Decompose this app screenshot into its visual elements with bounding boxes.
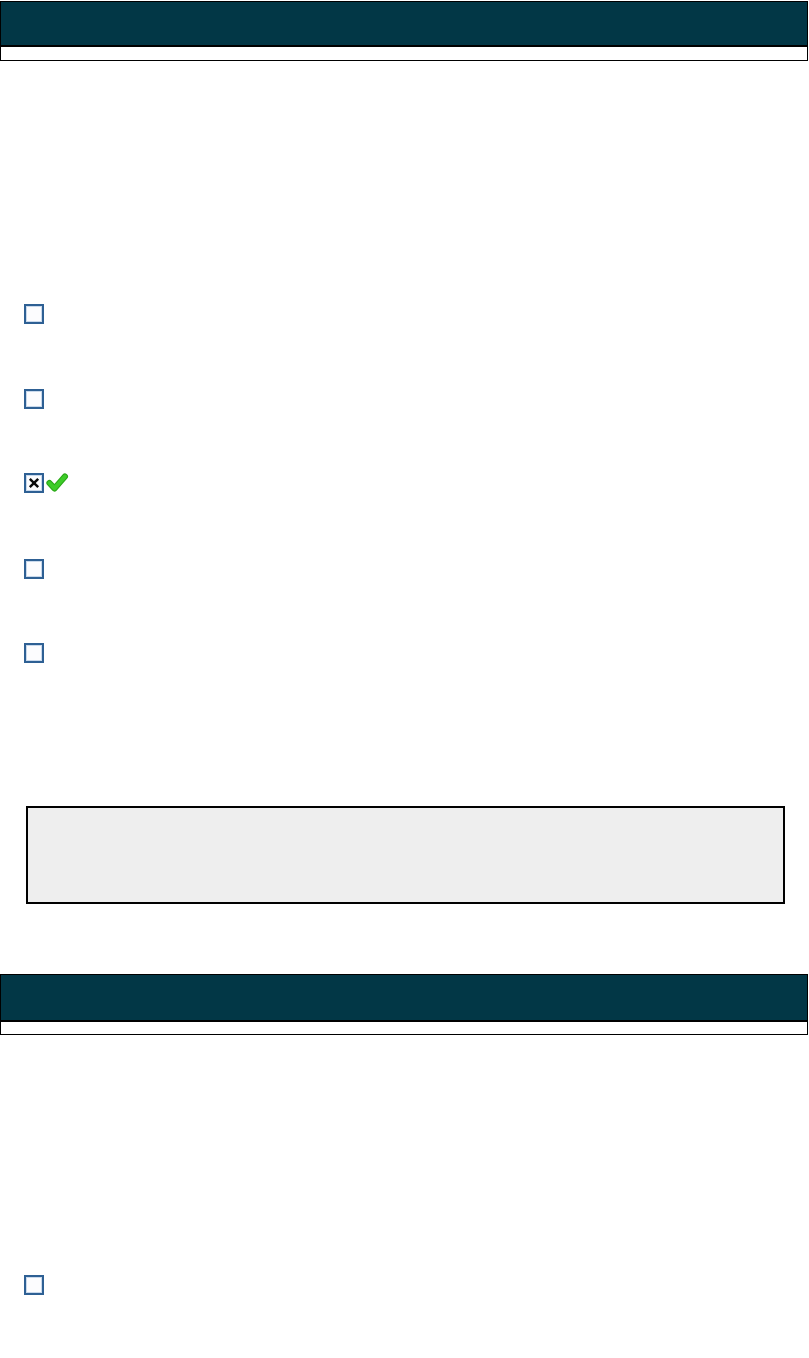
button[interactable]: Option six bbox=[24, 1275, 44, 1295]
button[interactable]: Section two header bbox=[0, 974, 808, 1035]
button[interactable]: Option two bbox=[24, 389, 44, 409]
button[interactable]: Validated bbox=[48, 474, 66, 492]
button[interactable]: Comment field bbox=[26, 806, 785, 904]
button[interactable]: Option five bbox=[24, 643, 44, 663]
button[interactable]: Option one bbox=[24, 304, 44, 324]
button[interactable]: Option four bbox=[24, 559, 44, 579]
button[interactable]: Option three, selected bbox=[24, 473, 44, 493]
button[interactable]: Section one header bbox=[0, 1, 808, 61]
